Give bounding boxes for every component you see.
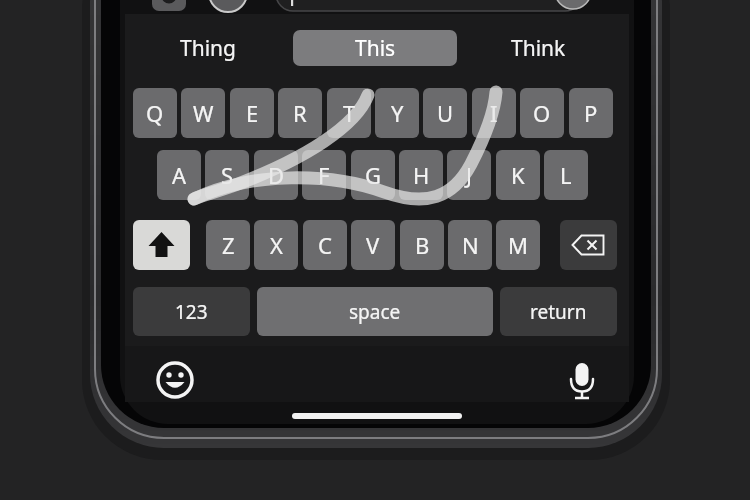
staticText: 123 (175, 299, 208, 325)
button[interactable]: F (302, 150, 346, 200)
staticText: U (437, 98, 454, 128)
button[interactable]: Emoji keyboard (156, 361, 194, 399)
staticText: B (415, 230, 430, 260)
button[interactable]: A (157, 150, 201, 200)
staticText: T (343, 98, 356, 128)
staticText: D (268, 160, 285, 190)
staticText: N (462, 230, 479, 260)
staticText: F (318, 160, 330, 190)
staticText: Q (146, 98, 164, 128)
staticText: E (246, 98, 259, 128)
button[interactable]: Shift (133, 220, 190, 270)
button[interactable]: I (472, 88, 516, 138)
button[interactable]: Y (375, 88, 419, 138)
staticText: Y (391, 98, 404, 128)
staticText: S (221, 160, 234, 190)
button[interactable]: X (254, 220, 298, 270)
button[interactable]: R (278, 88, 322, 138)
button[interactable]: H (399, 150, 443, 200)
staticText: P (584, 98, 598, 128)
button[interactable]: B (400, 220, 444, 270)
staticText: Z (222, 230, 235, 260)
staticText: O (533, 98, 551, 128)
button[interactable]: L (544, 150, 588, 200)
staticText: space (349, 299, 401, 325)
button[interactable]: P (569, 88, 613, 138)
staticText: H (413, 160, 430, 190)
staticText: X (270, 230, 283, 260)
staticText: A (172, 160, 187, 190)
button[interactable]: C (303, 220, 347, 270)
button[interactable]: M (496, 220, 540, 270)
button[interactable]: Backspace (560, 220, 617, 270)
staticText: R (293, 98, 307, 128)
button[interactable]: K (496, 150, 540, 200)
button[interactable]: This (293, 30, 457, 66)
staticText: G (365, 160, 382, 190)
staticText: Thing (180, 34, 236, 63)
staticText: Think (511, 34, 566, 63)
button[interactable]: 123 (133, 287, 250, 336)
button[interactable]: Dictation (566, 360, 598, 401)
staticText: C (318, 230, 332, 260)
staticText: J (466, 160, 473, 190)
staticText: This (355, 34, 396, 63)
button[interactable]: J (447, 150, 491, 200)
button[interactable]: Think (489, 33, 587, 63)
staticText: V (366, 230, 380, 260)
button[interactable]: U (423, 88, 467, 138)
staticText: W (193, 98, 214, 128)
button[interactable]: T (327, 88, 371, 138)
button[interactable]: return (500, 287, 617, 336)
button[interactable]: space (257, 287, 493, 336)
button[interactable]: Thing (158, 33, 258, 63)
staticText: I (490, 98, 498, 128)
staticText: M (508, 230, 528, 260)
button[interactable]: G (351, 150, 395, 200)
button[interactable]: Z (206, 220, 250, 270)
button[interactable]: E (230, 88, 274, 138)
staticText: L (560, 160, 572, 190)
button[interactable]: W (181, 88, 225, 138)
staticText: return (530, 299, 587, 325)
button[interactable]: O (520, 88, 564, 138)
button[interactable]: V (351, 220, 395, 270)
staticText: K (511, 160, 525, 190)
button[interactable]: S (205, 150, 249, 200)
button[interactable]: D (254, 150, 298, 200)
button[interactable]: Q (133, 88, 177, 138)
button[interactable]: N (448, 220, 492, 270)
